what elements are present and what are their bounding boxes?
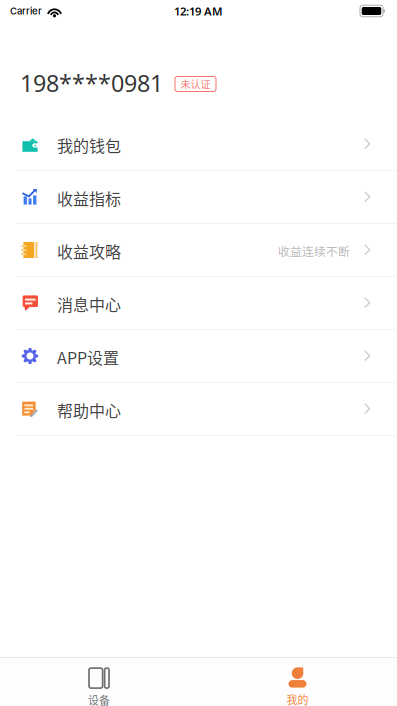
staticText: 收益攻略 bbox=[57, 239, 121, 263]
staticText: 12:19 AM bbox=[174, 3, 223, 19]
staticText: Carrier bbox=[10, 5, 42, 17]
staticText: 消息中心 bbox=[57, 292, 121, 316]
button[interactable]: 收益攻略 bbox=[0, 224, 397, 277]
staticText: 未认证 bbox=[180, 77, 210, 91]
staticText: APP设置 bbox=[57, 345, 119, 369]
button[interactable]: 消息中心 bbox=[0, 277, 397, 330]
button[interactable]: 设备 bbox=[0, 658, 198, 706]
staticText: 设备 bbox=[88, 692, 110, 706]
button[interactable]: 我的钱包 bbox=[0, 118, 397, 171]
staticText: 我的钱包 bbox=[57, 133, 121, 157]
button[interactable]: 我的 bbox=[198, 658, 397, 706]
staticText: 帮助中心 bbox=[57, 398, 121, 422]
button[interactable]: 帮助中心 bbox=[0, 383, 397, 436]
staticText: 收益指标 bbox=[57, 186, 121, 210]
button[interactable]: 收益指标 bbox=[0, 171, 397, 224]
staticText: 我的 bbox=[286, 692, 308, 706]
staticText: 198****0981 bbox=[20, 67, 163, 99]
button[interactable]: APP设置 bbox=[0, 330, 397, 383]
staticText: 收益连续不断 bbox=[278, 242, 350, 259]
